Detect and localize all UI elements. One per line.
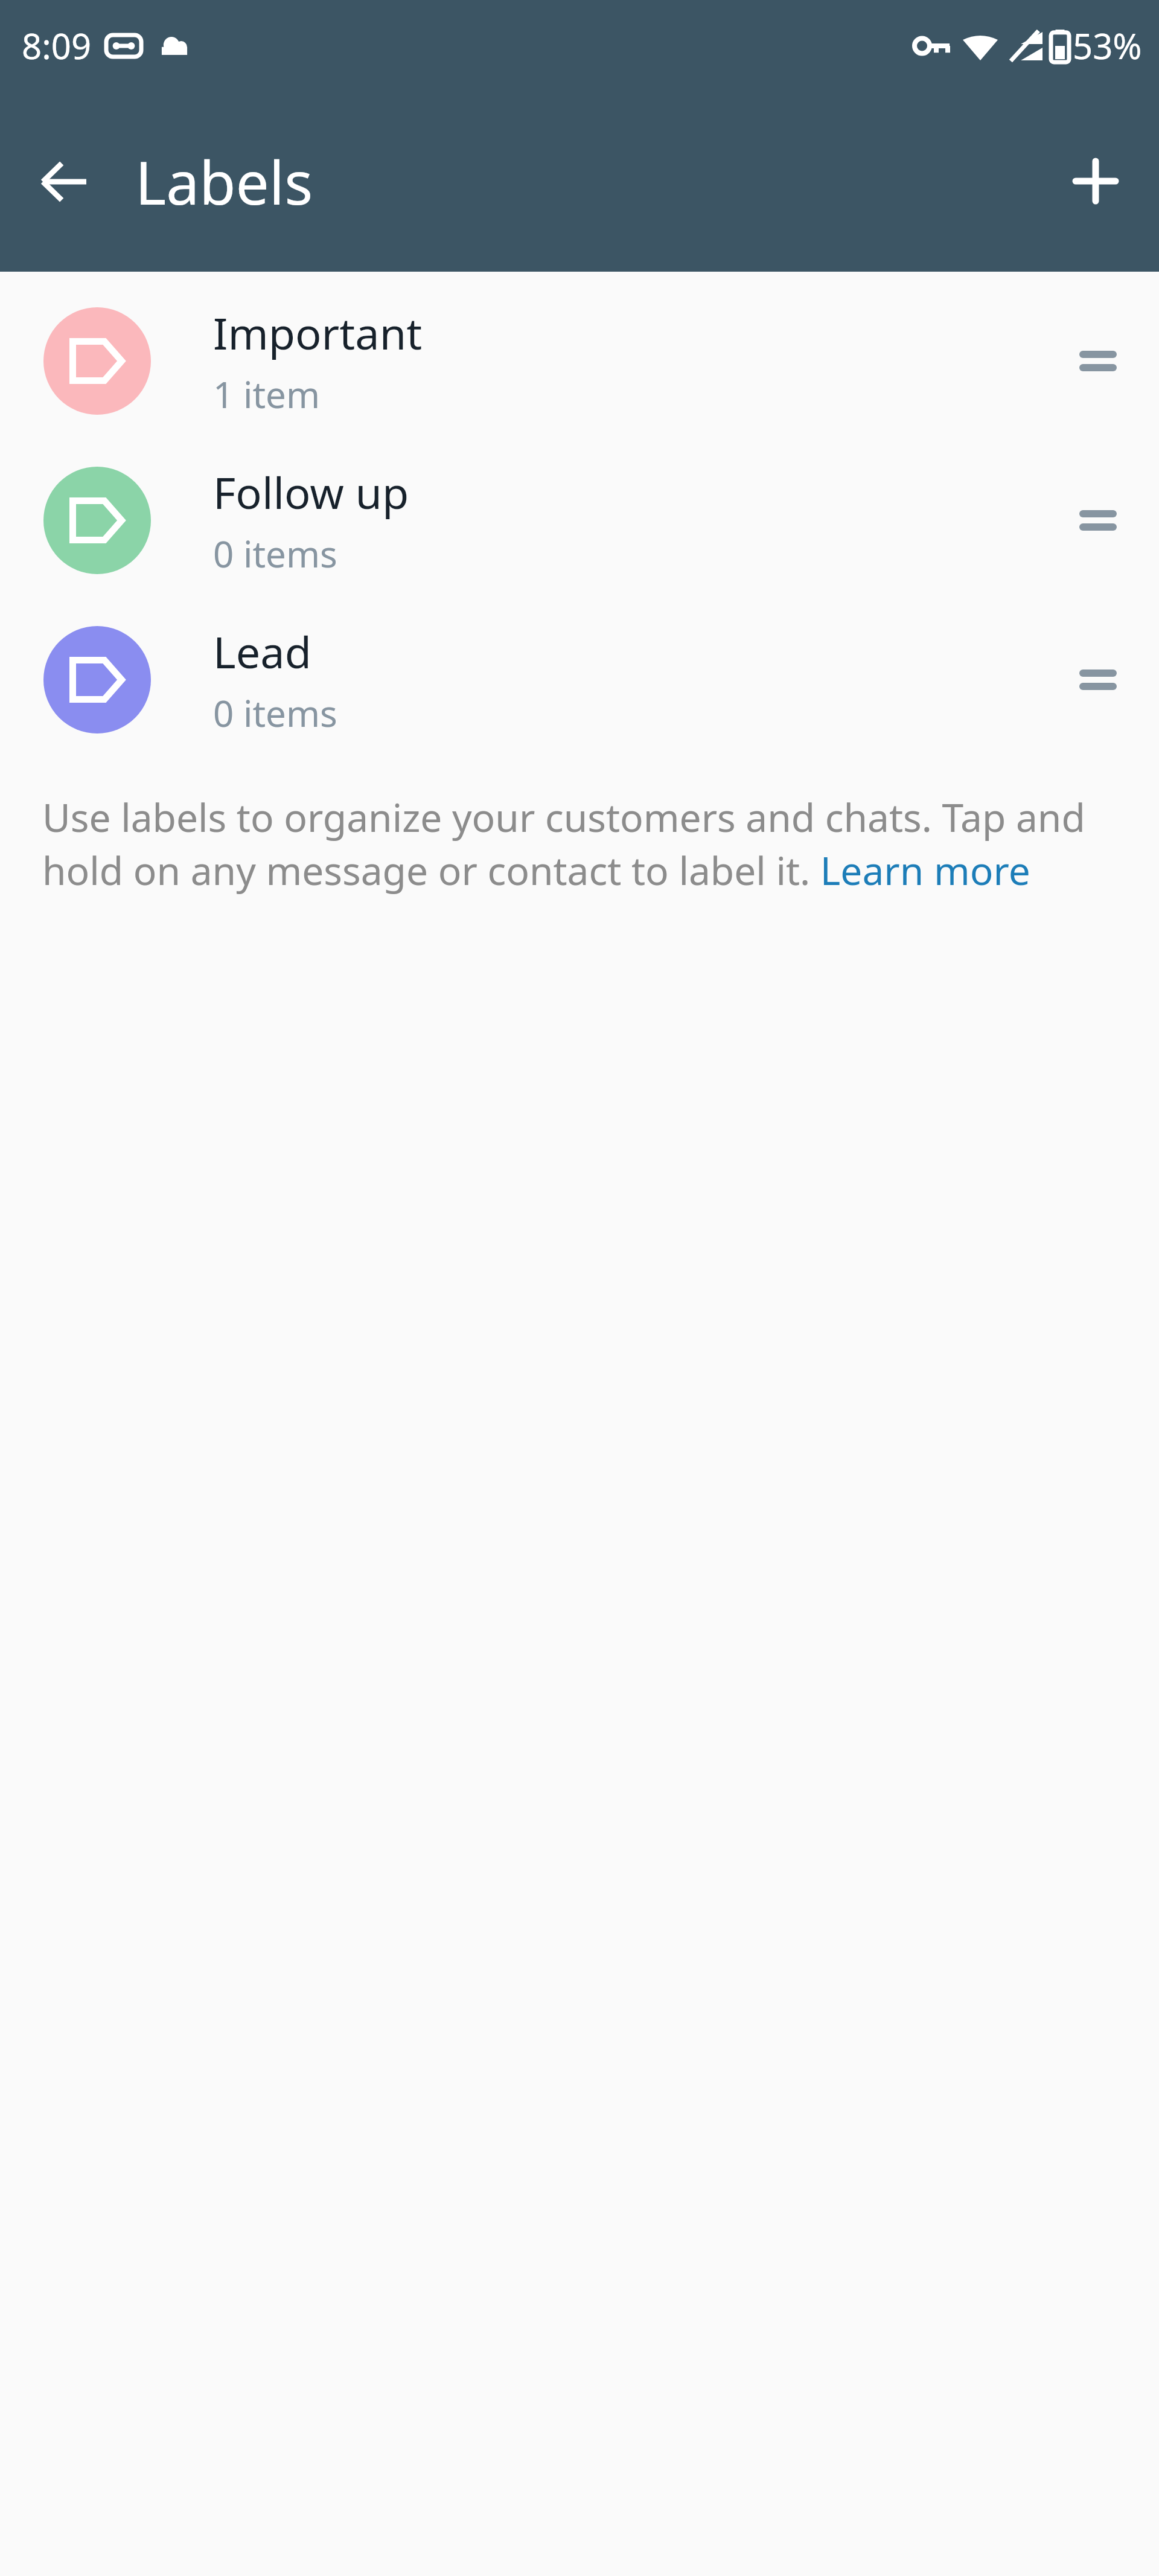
button[interactable]: Reorder Follow up bbox=[1053, 475, 1143, 566]
staticText: Lead bbox=[213, 622, 312, 681]
staticText: Important bbox=[213, 303, 423, 362]
staticText: 0 items bbox=[213, 688, 337, 738]
button[interactable]: Important bbox=[0, 281, 1159, 441]
button[interactable]: Reorder Important bbox=[1053, 316, 1143, 406]
button[interactable]: Reorder Lead bbox=[1053, 634, 1143, 725]
staticText: 53% bbox=[1073, 22, 1142, 69]
staticText: 8:09 bbox=[22, 22, 92, 69]
staticText: 1 item bbox=[213, 369, 320, 419]
button[interactable]: Add label bbox=[1050, 136, 1141, 226]
button[interactable]: Use labels to organize your customers an… bbox=[42, 791, 1124, 896]
staticText: 0 items bbox=[213, 529, 337, 578]
staticText: Follow up bbox=[213, 462, 409, 522]
button[interactable]: Follow up bbox=[0, 441, 1159, 600]
button[interactable]: Lead bbox=[0, 600, 1159, 759]
staticText: Labels bbox=[135, 141, 313, 222]
button[interactable]: Back bbox=[21, 138, 108, 225]
